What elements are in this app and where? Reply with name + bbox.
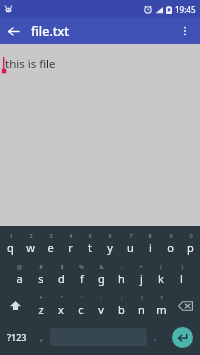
- staticText: 2: [29, 232, 33, 239]
- button[interactable]: Backspace: [171, 290, 200, 321]
- button[interactable]: *: [30, 290, 51, 321]
- staticText: &: [99, 263, 104, 270]
- staticText: (: [160, 263, 162, 270]
- staticText: ?: [160, 294, 163, 301]
- button[interactable]: ': [71, 290, 91, 321]
- staticText: g: [98, 271, 105, 286]
- staticText: r: [68, 240, 73, 255]
- staticText: 6: [108, 232, 112, 239]
- staticText: %: [79, 263, 84, 270]
- staticText: ": [60, 294, 63, 301]
- staticText: -: [121, 263, 123, 270]
- staticText: b: [118, 302, 125, 317]
- staticText: f: [80, 271, 84, 286]
- button[interactable]: ,: [33, 321, 50, 353]
- button[interactable]: #: [30, 259, 51, 290]
- button[interactable]: Back: [0, 18, 26, 44]
- staticText: !: [141, 294, 143, 301]
- staticText: q: [7, 240, 14, 255]
- button[interactable]: .: [147, 321, 164, 353]
- staticText: 1: [9, 232, 13, 239]
- staticText: m: [156, 302, 167, 317]
- staticText: z: [38, 302, 44, 317]
- staticText: ?123: [7, 331, 27, 343]
- staticText: #: [39, 263, 43, 270]
- staticText: t: [88, 240, 92, 255]
- button[interactable]: 0: [180, 228, 200, 259]
- staticText: d: [58, 271, 65, 286]
- staticText: i: [149, 240, 152, 255]
- staticText: s: [38, 271, 44, 286]
- staticText: o: [167, 240, 174, 255]
- button[interactable]: More options: [172, 18, 198, 44]
- button[interactable]: +: [131, 259, 151, 290]
- staticText: 19:45: [175, 4, 196, 15]
- button[interactable]: 8: [140, 228, 160, 259]
- button[interactable]: 2: [20, 228, 40, 259]
- button[interactable]: Shift: [0, 290, 30, 321]
- button[interactable]: &: [91, 259, 111, 290]
- staticText: l: [180, 271, 183, 286]
- staticText: 3: [49, 232, 53, 239]
- staticText: j: [140, 271, 143, 286]
- staticText: ): [181, 263, 183, 270]
- staticText: @: [17, 263, 22, 270]
- button[interactable]: 9: [160, 228, 180, 259]
- button[interactable]: 4: [60, 228, 80, 259]
- button[interactable]: ?: [151, 290, 171, 321]
- staticText: .: [154, 330, 157, 344]
- staticText: n: [138, 302, 145, 317]
- button[interactable]: Enter: [164, 321, 200, 353]
- staticText: $: [60, 263, 64, 270]
- staticText: 5: [88, 232, 92, 239]
- button[interactable]: 1: [0, 228, 20, 259]
- staticText: +: [139, 263, 143, 270]
- button[interactable]: !: [131, 290, 151, 321]
- staticText: 8: [148, 232, 152, 239]
- button[interactable]: 6: [100, 228, 120, 259]
- staticText: ': [80, 294, 82, 301]
- staticText: ;: [121, 294, 123, 301]
- button[interactable]: @: [9, 259, 30, 290]
- staticText: e: [47, 240, 54, 255]
- staticText: a: [16, 271, 23, 286]
- button[interactable]: :: [91, 290, 111, 321]
- staticText: w: [26, 240, 35, 255]
- button[interactable]: ": [51, 290, 71, 321]
- staticText: 0: [189, 232, 193, 239]
- staticText: v: [98, 302, 104, 317]
- staticText: :: [100, 294, 102, 301]
- staticText: p: [187, 240, 194, 255]
- staticText: k: [158, 271, 164, 286]
- button[interactable]: 5: [80, 228, 100, 259]
- button[interactable]: ): [171, 259, 191, 290]
- button[interactable]: 7: [120, 228, 140, 259]
- button[interactable]: %: [71, 259, 91, 290]
- button[interactable]: ?123: [0, 321, 33, 353]
- staticText: h: [118, 271, 125, 286]
- button[interactable]: ;: [111, 290, 131, 321]
- staticText: 9: [169, 232, 173, 239]
- staticText: ,: [40, 330, 43, 344]
- staticText: 7: [129, 232, 133, 239]
- button[interactable]: 3: [40, 228, 60, 259]
- staticText: 4: [69, 232, 73, 239]
- staticText: *: [39, 294, 43, 301]
- staticText: c: [78, 302, 84, 317]
- staticText: this is file: [5, 56, 56, 72]
- button[interactable]: $: [51, 259, 71, 290]
- staticText: y: [107, 240, 113, 255]
- staticText: u: [127, 240, 134, 255]
- button[interactable]: this is file: [3, 56, 56, 72]
- button[interactable]: -: [111, 259, 131, 290]
- staticText: x: [58, 302, 64, 317]
- staticText: file.txt: [31, 23, 70, 40]
- button[interactable]: (: [151, 259, 171, 290]
